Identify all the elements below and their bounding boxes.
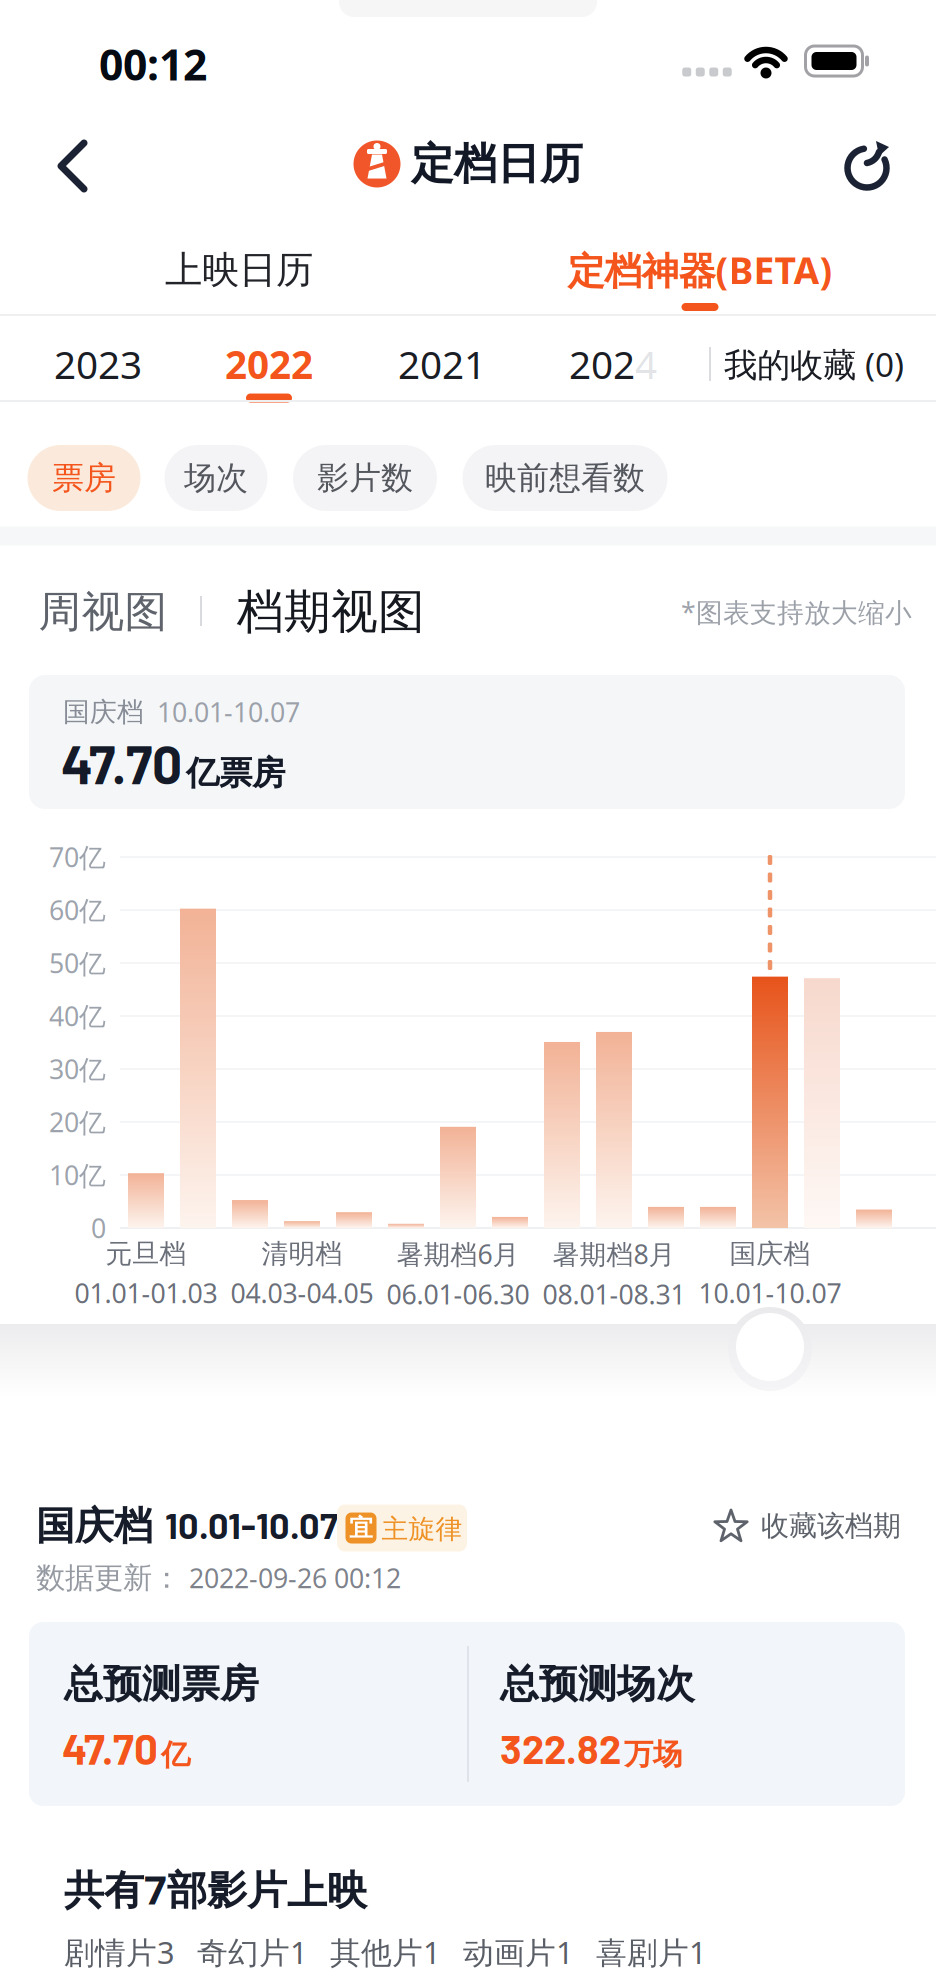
staticText: 202 xyxy=(569,338,635,390)
staticText: 0 xyxy=(91,1210,106,1246)
staticText: 动画片1 xyxy=(463,1932,574,1972)
staticText: 06.01-06.30 xyxy=(386,1276,529,1312)
button[interactable]: 票房 xyxy=(27,445,140,511)
staticText: 宜 xyxy=(349,1513,373,1543)
staticText: 暑期档6月 xyxy=(396,1236,519,1271)
staticText: 国庆档 xyxy=(729,1237,810,1270)
button[interactable]: 202 xyxy=(569,338,657,390)
button[interactable]: 2021 xyxy=(398,338,486,390)
staticText: 04.03-04.05 xyxy=(230,1275,373,1311)
button[interactable]: 上映日历 xyxy=(165,247,313,293)
button[interactable]: 2022 xyxy=(225,338,313,390)
staticText: 清明档 xyxy=(261,1237,342,1270)
button[interactable]: 我的收藏 (0) xyxy=(724,342,904,386)
staticText: 主旋律 xyxy=(381,1513,462,1545)
staticText: 票房 xyxy=(52,458,116,498)
staticText: 国庆档 xyxy=(36,1502,153,1550)
staticText: 322.82 xyxy=(500,1724,621,1772)
button[interactable]: Refresh xyxy=(842,139,894,191)
staticText: 国庆档 xyxy=(63,696,144,728)
staticText: 2022 xyxy=(225,338,313,390)
staticText: 60亿 xyxy=(49,892,106,928)
staticText: 共有7部影片上映 xyxy=(64,1862,367,1915)
staticText: *图表支持放大缩小 xyxy=(681,594,912,630)
staticText: 00:12 xyxy=(99,36,207,92)
staticText: 暑期档8月 xyxy=(552,1236,675,1271)
staticText: 30亿 xyxy=(49,1051,106,1087)
staticText: 其他片1 xyxy=(330,1932,441,1972)
button[interactable]: Drag handle xyxy=(736,1313,804,1381)
staticText: 2021 xyxy=(398,338,486,390)
staticText: 50亿 xyxy=(49,945,106,981)
staticText: 影片数 xyxy=(317,458,413,498)
staticText: 数据更新： xyxy=(36,1560,181,1596)
staticText: 档期视图 xyxy=(237,583,425,641)
staticText: 10.01-10.07 xyxy=(157,694,300,730)
button[interactable]: 影片数 xyxy=(293,445,437,511)
staticText: 10.01-10.07 xyxy=(698,1275,841,1311)
staticText: 我的收藏 (0) xyxy=(724,342,904,386)
staticText: 场次 xyxy=(184,458,248,498)
staticText: 40亿 xyxy=(49,998,106,1034)
staticText: 剧情片3 xyxy=(64,1932,175,1972)
staticText: 喜剧片1 xyxy=(596,1932,707,1972)
staticText: 上映日历 xyxy=(165,247,313,293)
button[interactable]: 映前想看数 xyxy=(462,445,667,511)
staticText: 总预测票房 xyxy=(64,1660,259,1708)
staticText: 20亿 xyxy=(49,1104,106,1140)
staticText: 周视图 xyxy=(38,586,167,638)
staticText: 01.01-01.03 xyxy=(74,1275,217,1311)
staticText: 收藏该档期 xyxy=(761,1509,901,1543)
staticText: 亿票房 xyxy=(186,753,285,793)
staticText: 10.01-10.07 xyxy=(165,1503,338,1546)
button[interactable]: Back xyxy=(54,138,92,194)
staticText: 70亿 xyxy=(49,839,106,875)
button[interactable]: 收藏该档期 xyxy=(711,1506,901,1546)
staticText: 万场 xyxy=(624,1736,682,1772)
staticText: 47.70 xyxy=(62,1723,158,1773)
staticText: 元旦档 xyxy=(105,1237,186,1270)
staticText: 定档日历 xyxy=(411,138,583,190)
staticText: 2023 xyxy=(54,338,142,390)
staticText: 4 xyxy=(635,338,657,390)
staticText: 总预测场次 xyxy=(500,1660,695,1708)
staticText: 亿 xyxy=(161,1737,190,1773)
button[interactable]: 定档神器(BETA) xyxy=(567,245,832,295)
button[interactable]: 场次 xyxy=(164,445,267,511)
staticText: 10亿 xyxy=(49,1157,106,1193)
staticText: 47.70 xyxy=(61,731,182,795)
staticText: 定档神器(BETA) xyxy=(567,245,832,295)
button[interactable]: 档期视图 xyxy=(237,583,425,641)
staticText: 2022-09-26 00:12 xyxy=(189,1560,401,1596)
staticText: 奇幻片1 xyxy=(197,1932,308,1972)
staticText: 08.01-08.31 xyxy=(542,1276,685,1312)
button[interactable]: 周视图 xyxy=(38,586,167,638)
button[interactable]: 2023 xyxy=(54,338,142,390)
staticText: 映前想看数 xyxy=(485,458,645,498)
